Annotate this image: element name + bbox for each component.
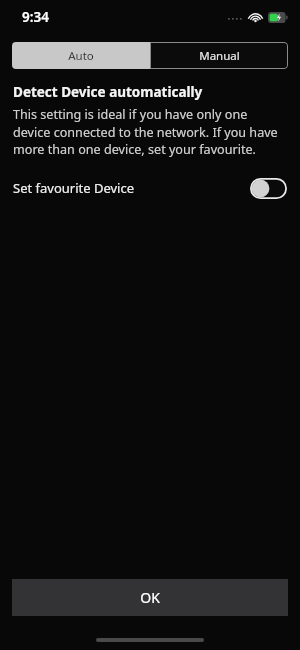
button[interactable]: Set favourite Device (0, 173, 300, 203)
button[interactable]: Set favourite Device toggle (250, 178, 287, 199)
button[interactable]: Auto (12, 42, 150, 69)
staticText: Auto (68, 48, 94, 64)
button[interactable]: OK (12, 579, 288, 616)
staticText: Manual (199, 48, 240, 64)
staticText: This setting is ideal if you have only o… (13, 106, 287, 157)
staticText: Detect Device automatically (13, 83, 203, 101)
other: Wi-Fi (248, 12, 263, 23)
staticText: 9:34 (22, 8, 49, 26)
button[interactable]: Manual (150, 42, 288, 69)
other: Battery charging (268, 12, 288, 23)
staticText: OK (140, 588, 160, 607)
staticText: Set favourite Device (13, 179, 135, 197)
